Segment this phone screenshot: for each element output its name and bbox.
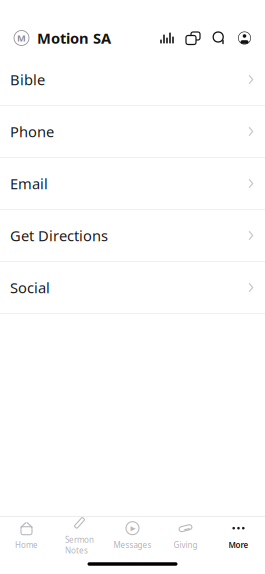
button[interactable]: Email — [0, 158, 265, 210]
staticText: Phone — [10, 122, 54, 141]
button[interactable]: Account — [232, 31, 265, 44]
button[interactable]: Home — [0, 515, 53, 556]
button[interactable]: Search — [206, 27, 232, 49]
button[interactable]: Get Directions — [0, 210, 265, 262]
button[interactable]: More — [212, 515, 265, 556]
staticText: Get Directions — [10, 226, 108, 245]
staticText: Bible — [10, 70, 45, 89]
button[interactable]: Phone — [0, 106, 265, 158]
button[interactable]: ▶ — [106, 515, 159, 556]
staticText: Messages — [113, 540, 151, 550]
staticText: Email — [10, 174, 48, 193]
button[interactable]: Stats — [154, 27, 180, 49]
staticText: Sermon Notes — [65, 534, 94, 556]
button[interactable]: Social — [0, 262, 265, 314]
button[interactable]: Bible — [0, 54, 265, 106]
staticText: M — [17, 32, 26, 44]
staticText: More — [228, 540, 248, 550]
button[interactable]: Sermon Notes — [53, 509, 106, 562]
staticText: Motion SA — [37, 28, 111, 48]
staticText: Giving — [173, 540, 197, 550]
staticText: Home — [15, 540, 38, 550]
button[interactable]: M — [0, 28, 111, 48]
staticText: Social — [10, 278, 50, 297]
button[interactable]: Giving — [159, 515, 212, 556]
staticText: ▶ — [130, 524, 135, 532]
button[interactable]: Messages — [180, 27, 206, 49]
